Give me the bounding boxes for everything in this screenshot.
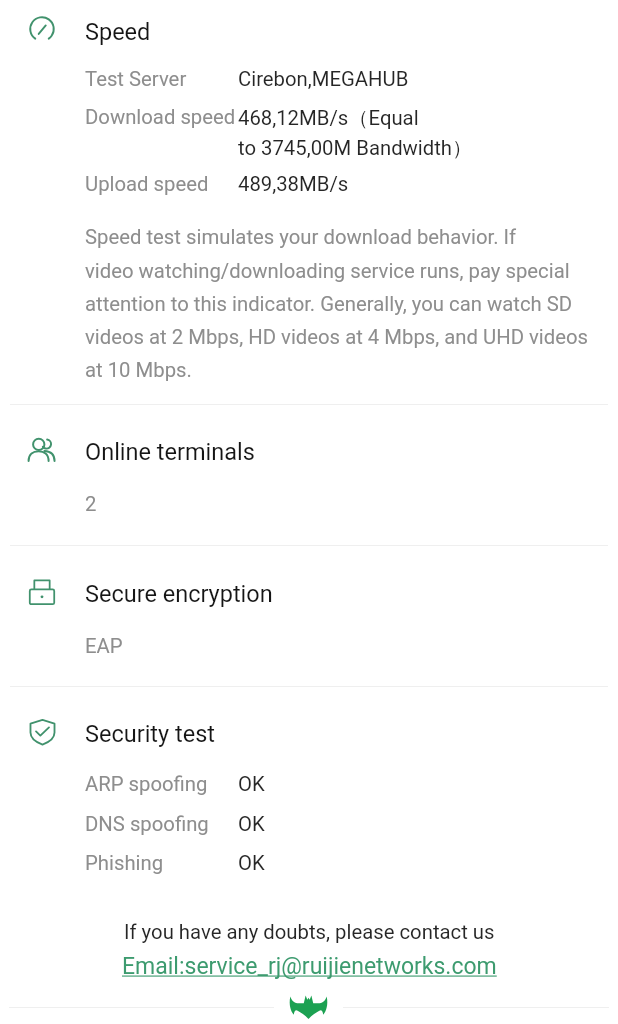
staticText: OK — [238, 851, 265, 875]
staticText: Email:service_rj@ruijienetworks.com — [122, 953, 497, 980]
other: Ruijie logo — [288, 995, 329, 1019]
staticText: 2 — [85, 492, 97, 516]
staticText: 489,38MB/s — [238, 172, 349, 196]
button[interactable]: Secure encryption — [0, 546, 618, 686]
staticText: Speed — [85, 18, 151, 46]
staticText: Download speed — [85, 105, 236, 129]
staticText: OK — [238, 772, 265, 796]
button[interactable]: Email:service_rj@ruijienetworks.com — [122, 953, 497, 980]
staticText: Security test — [85, 720, 215, 748]
other: Online terminals — [27, 435, 56, 463]
staticText: DNS spoofing — [85, 812, 209, 836]
staticText: Phishing — [85, 851, 164, 875]
staticText: ARP spoofing — [85, 772, 208, 796]
other: Security test — [29, 719, 56, 749]
button[interactable]: Security test — [0, 687, 618, 875]
staticText: If you have any doubts, please contact u… — [124, 920, 495, 944]
other: Speed — [28, 15, 56, 43]
button[interactable]: Speed — [0, 0, 618, 404]
staticText: Cirebon,MEGAHUB — [238, 67, 409, 91]
staticText: Secure encryption — [85, 580, 273, 608]
other: Secure encryption — [29, 579, 55, 606]
staticText: Test Server — [85, 67, 187, 91]
staticText: Speed test simulates your download behav… — [85, 225, 589, 381]
button[interactable]: Online terminals — [0, 405, 618, 545]
staticText: Upload speed — [85, 172, 209, 196]
staticText: EAP — [85, 634, 123, 658]
staticText: Online terminals — [85, 438, 255, 466]
staticText: OK — [238, 812, 265, 836]
staticText: 468,12MB/s（Equal to 3745,00M Bandwidth） — [238, 105, 473, 161]
